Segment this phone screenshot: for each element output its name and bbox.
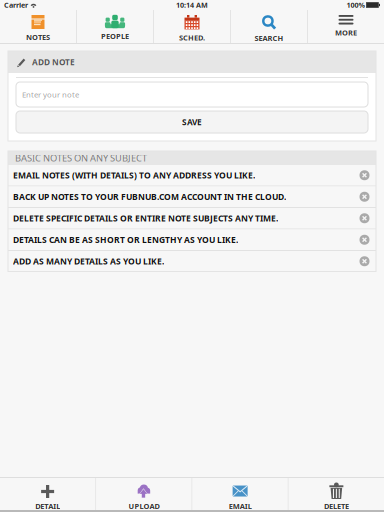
button[interactable]: EMAIL	[192, 478, 288, 510]
button[interactable]: NOTES	[0, 10, 76, 44]
button[interactable]: ADD AS MANY DETAILS AS YOU LIKE.	[8, 251, 376, 271]
staticText: DETAIL	[35, 501, 60, 511]
staticText: MORE	[335, 27, 357, 38]
staticText: UPLOAD	[128, 501, 159, 511]
staticText: PEOPLE	[101, 31, 129, 41]
button[interactable]: PEOPLE	[77, 10, 153, 44]
button[interactable]: BACK UP NOTES TO YOUR FUBNUB.COM ACCOUNT…	[8, 186, 376, 207]
staticText: Carrier	[4, 0, 28, 10]
staticText: ADD NOTE	[32, 56, 75, 68]
staticText: DELETE	[324, 501, 349, 511]
button[interactable]: MORE	[308, 10, 384, 44]
staticText: DELETE SPECIFIC DETAILS OR ENTIRE NOTE S…	[13, 212, 278, 224]
button[interactable]: EMAIL NOTES (WITH DETAILS) TO ANY ADDRES…	[8, 165, 376, 185]
staticText: EMAIL NOTES (WITH DETAILS) TO ANY ADDRES…	[13, 169, 255, 181]
button[interactable]: DELETE SPECIFIC DETAILS OR ENTIRE NOTE S…	[8, 208, 376, 228]
staticText: SAVE	[182, 116, 202, 128]
staticText: Enter your note	[22, 89, 79, 100]
staticText: EMAIL	[229, 501, 252, 511]
staticText: 10:14 AM	[176, 0, 208, 10]
staticText: NOTES	[26, 32, 50, 42]
button[interactable]: DELETE	[289, 478, 384, 510]
button[interactable]: DETAILS CAN BE AS SHORT OR LENGTHY AS YO…	[8, 229, 376, 250]
staticText: SCHED.	[179, 32, 205, 43]
button[interactable]: SCHED.	[154, 10, 230, 44]
staticText: SEARCH	[254, 33, 283, 43]
staticText: DETAILS CAN BE AS SHORT OR LENGTHY AS YO…	[13, 234, 238, 245]
button[interactable]: SAVE	[16, 111, 368, 133]
button[interactable]: SEARCH	[231, 10, 307, 44]
button[interactable]: UPLOAD	[96, 478, 191, 510]
staticText: BACK UP NOTES TO YOUR FUBNUB.COM ACCOUNT…	[13, 191, 286, 202]
staticText: 100%	[346, 0, 364, 10]
staticText: ADD AS MANY DETAILS AS YOU LIKE.	[13, 255, 164, 267]
button[interactable]: DETAIL	[0, 478, 95, 510]
staticText: BASIC NOTES ON ANY SUBJECT	[15, 152, 147, 164]
